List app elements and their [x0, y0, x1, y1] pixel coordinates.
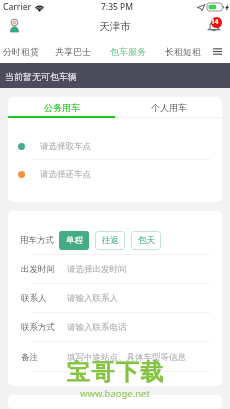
- staticText: 长租短租: [165, 46, 201, 57]
- staticText: 单程: [66, 235, 83, 246]
- button[interactable]: 单程: [59, 231, 89, 250]
- staticText: 往返: [102, 235, 119, 246]
- staticText: 填写中途站点、具体车型等信息: [67, 352, 186, 363]
- button[interactable]: Menu: [209, 39, 226, 63]
- staticText: www.baoge.net: [80, 387, 150, 400]
- staticText: 7:35 PM: [101, 1, 134, 13]
- staticText: 用车方式: [20, 235, 54, 246]
- button[interactable]: 联系方式: [8, 313, 222, 342]
- staticText: 包天: [138, 235, 155, 246]
- staticText: 分时租赁: [3, 46, 39, 57]
- staticText: 请选择还车点: [40, 169, 91, 180]
- staticText: 共享巴士: [55, 46, 91, 57]
- button[interactable]: 请选择取车点: [8, 132, 222, 160]
- staticText: 包车服务: [110, 46, 146, 57]
- staticText: 天津市: [99, 20, 131, 33]
- staticText: 宝哥下载: [66, 358, 164, 387]
- staticText: 公务用车: [44, 102, 80, 113]
- staticText: 请选择取车点: [40, 141, 91, 152]
- button[interactable]: 往返: [95, 231, 125, 250]
- button[interactable]: 包天: [131, 231, 161, 250]
- button[interactable]: 出发时间: [8, 255, 222, 284]
- button[interactable]: 备注: [8, 342, 222, 372]
- staticText: 请选择出发时间: [67, 264, 127, 275]
- staticText: 备注: [21, 352, 67, 363]
- button[interactable]: 共享巴士: [54, 39, 92, 63]
- staticText: Carrier: [3, 1, 32, 13]
- staticText: 个人用车: [151, 102, 187, 113]
- staticText: 联系方式: [21, 322, 67, 333]
- staticText: 当前暂无可包车辆: [5, 71, 77, 82]
- button[interactable]: Notifications: [205, 14, 225, 39]
- staticText: 请输入联系电话: [67, 322, 127, 333]
- staticText: 联系人: [21, 293, 67, 304]
- staticText: 出发时间: [21, 264, 67, 275]
- button[interactable]: 公务用车: [8, 97, 115, 118]
- button[interactable]: 个人用车: [115, 97, 222, 118]
- button[interactable]: 联系人: [8, 284, 222, 313]
- button[interactable]: Profile: [10, 19, 19, 32]
- button[interactable]: 请选择还车点: [8, 160, 222, 188]
- button[interactable]: 长租短租: [164, 39, 202, 63]
- staticText: 请输入联系人: [67, 293, 118, 304]
- staticText: 146: [211, 17, 222, 28]
- button[interactable]: 分时租赁: [2, 39, 40, 63]
- button[interactable]: 包车服务: [109, 39, 147, 63]
